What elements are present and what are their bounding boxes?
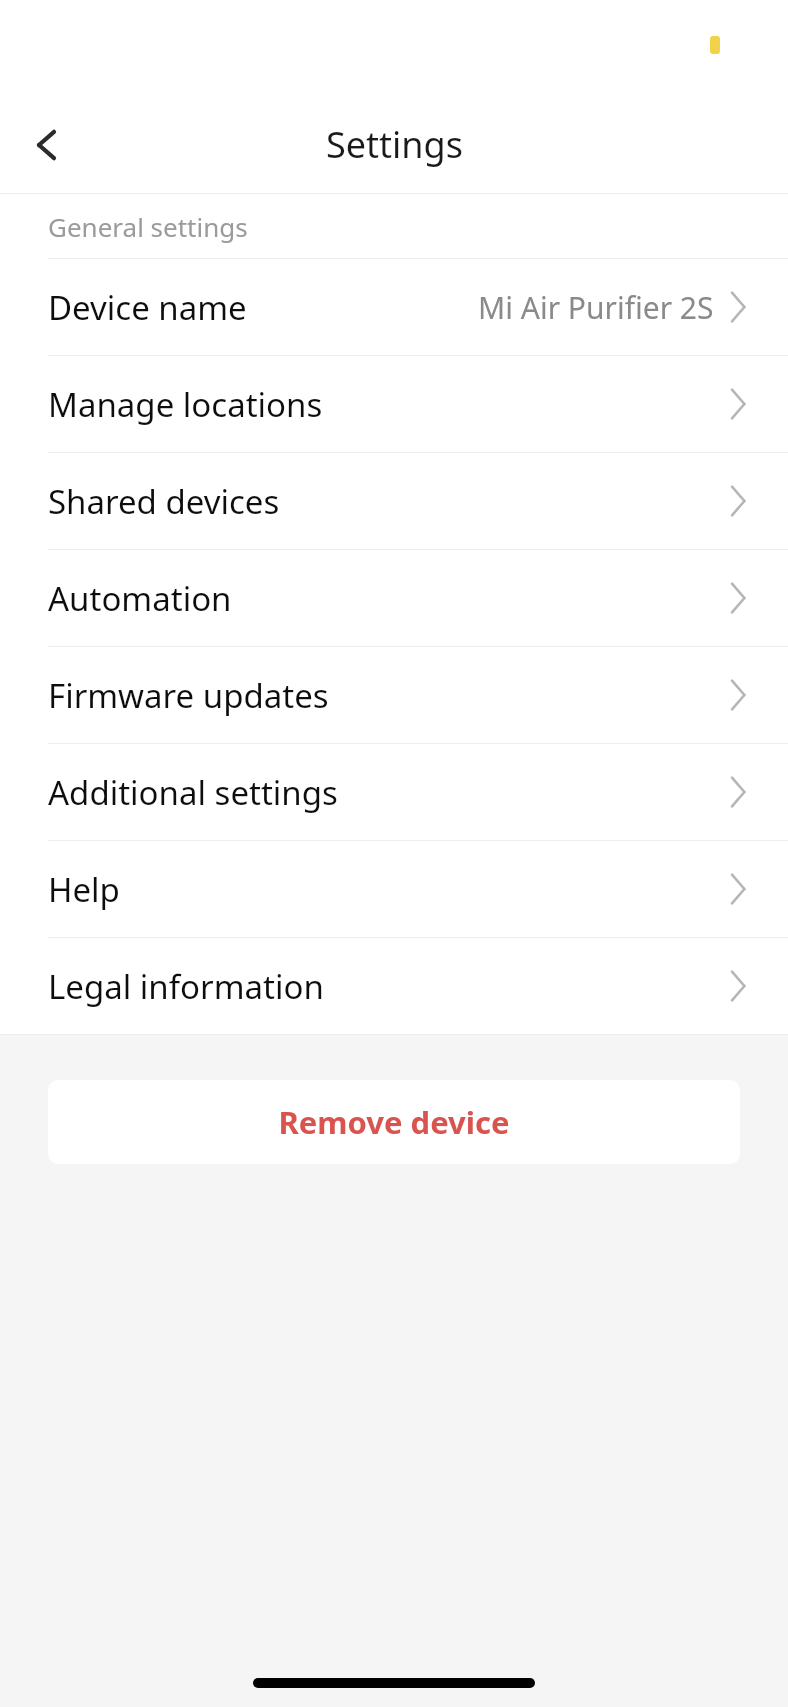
staticText: Device name (48, 285, 247, 330)
staticText: Firmware updates (48, 673, 329, 718)
staticText: Legal information (48, 964, 324, 1009)
staticText: Shared devices (48, 479, 280, 524)
button[interactable]: Device name (0, 259, 788, 355)
staticText: General settings (48, 209, 248, 244)
button[interactable]: Remove device (48, 1080, 740, 1164)
button[interactable]: Automation (0, 550, 788, 646)
staticText: Mi Air Purifier 2S (478, 287, 714, 328)
button[interactable]: Additional settings (0, 744, 788, 840)
staticText: Remove device (278, 1101, 510, 1143)
button[interactable]: Shared devices (0, 453, 788, 549)
staticText: Additional settings (48, 770, 338, 815)
staticText: Manage locations (48, 382, 323, 427)
staticText: Help (48, 867, 120, 912)
staticText: Settings (326, 120, 463, 169)
button[interactable]: Help (0, 841, 788, 937)
button[interactable]: Back (0, 97, 96, 193)
staticText: Automation (48, 576, 232, 621)
button[interactable]: Legal information (0, 938, 788, 1034)
button[interactable]: Manage locations (0, 356, 788, 452)
button[interactable]: Firmware updates (0, 647, 788, 743)
